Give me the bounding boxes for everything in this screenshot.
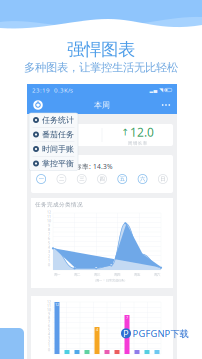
staticText: 12: [55, 302, 59, 307]
staticText: 0: [48, 348, 50, 352]
staticText: 1: [48, 258, 50, 263]
staticText: 0: [48, 262, 50, 267]
staticText: 3: [48, 249, 50, 254]
staticText: 1: [48, 344, 50, 348]
staticText: 12: [47, 210, 51, 214]
staticText: 2: [48, 340, 50, 344]
button[interactable]: 三: [72, 171, 92, 186]
staticText: 六: [140, 176, 145, 182]
button[interactable]: 任务统计: [29, 113, 78, 127]
staticText: 6: [48, 236, 50, 241]
staticText: 任务完成分类情况: [35, 201, 83, 208]
staticText: P: [123, 327, 129, 340]
staticText: 四: [99, 176, 104, 182]
button[interactable]: 番茄任务: [29, 127, 78, 141]
staticText: 11: [47, 304, 51, 308]
staticText: 番茄任务: [42, 129, 74, 140]
staticText: 5: [48, 328, 50, 332]
staticText: 周增长率: [128, 140, 148, 146]
staticText: 6: [48, 324, 50, 328]
staticText: 强悍图表: [67, 39, 135, 60]
staticText: 掌控平衡: [42, 158, 74, 169]
staticText: 周四: [114, 272, 120, 277]
staticText: 五: [120, 176, 125, 182]
staticText: 3: [48, 336, 50, 340]
staticText: 周二: [74, 272, 80, 277]
staticText: 周六: [154, 272, 160, 277]
staticText: 三: [79, 176, 84, 182]
staticText: 周三: [94, 272, 100, 277]
staticText: ◥: [159, 87, 163, 93]
staticText: 12: [47, 300, 51, 304]
staticText: 任务统计图表: [33, 115, 69, 122]
staticText: 多种图表，让掌控生活无比轻松: [24, 60, 178, 75]
staticText: 二: [59, 176, 64, 182]
staticText: 10: [47, 219, 51, 223]
staticText: 达标率: 14.3%: [68, 162, 113, 171]
staticText: 4: [48, 332, 50, 336]
button[interactable]: 时间手账: [29, 142, 78, 156]
staticText: 7: [48, 232, 50, 236]
staticText: 一: [39, 176, 44, 182]
staticText: 9: [48, 312, 50, 316]
staticText: 任务统计: [42, 115, 74, 125]
staticText: 周一: [54, 272, 60, 277]
button[interactable]: 五: [112, 171, 132, 186]
staticText: 时间手账: [42, 144, 74, 154]
staticText: ↑: [121, 127, 129, 138]
staticText: 11: [47, 214, 51, 219]
staticText: 23:19 0.3K/s: [32, 86, 73, 94]
staticText: 日: [160, 176, 165, 182]
staticText: 2: [48, 254, 50, 258]
button[interactable]: 掌控平衡: [29, 156, 78, 170]
staticText: 本周均值: [56, 140, 76, 146]
staticText: （周一 ~ 日常完成任务）: [93, 278, 127, 282]
staticText: ▂▄: [149, 87, 157, 93]
staticText: 12.0: [130, 124, 154, 140]
staticText: 本周: [94, 100, 110, 110]
staticText: 5: [48, 240, 50, 245]
staticText: 9: [48, 223, 50, 228]
staticText: 8: [48, 227, 50, 232]
button[interactable]: 四: [92, 171, 112, 186]
button[interactable]: 六: [132, 171, 153, 186]
staticText: 7: [48, 320, 50, 324]
button[interactable]: Profile: [30, 96, 46, 114]
staticText: 7: [126, 315, 128, 320]
staticText: 完成次数: 7次: [35, 163, 65, 170]
staticText: 10: [47, 308, 51, 312]
button[interactable]: 一: [31, 171, 51, 186]
button[interactable]: 二: [51, 171, 72, 186]
staticText: 8: [48, 316, 50, 320]
staticText: PGFGNP下载: [132, 327, 188, 340]
button[interactable]: 日: [153, 171, 173, 186]
button[interactable]: More: [158, 96, 174, 114]
staticText: 1.71: [54, 124, 78, 140]
staticText: 4: [96, 327, 98, 332]
staticText: 周五: [134, 272, 140, 277]
staticText: 4: [48, 245, 50, 250]
